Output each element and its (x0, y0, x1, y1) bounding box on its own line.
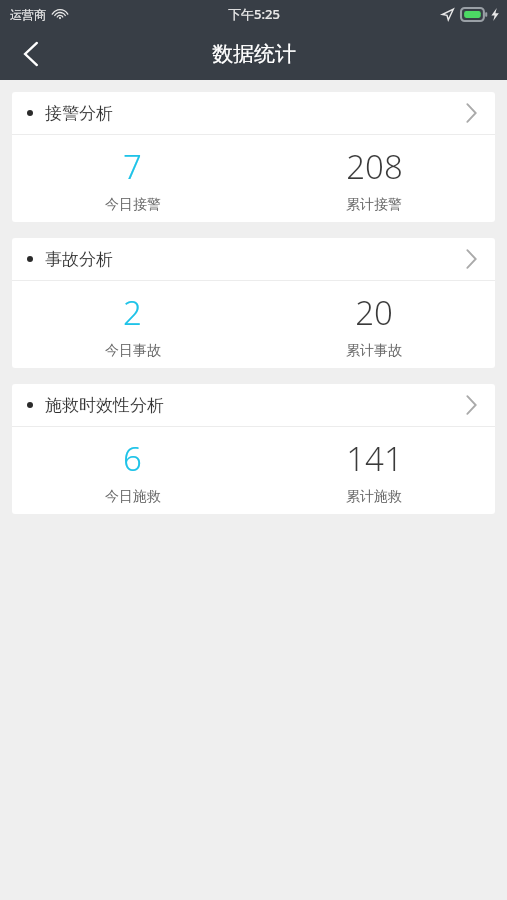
staticText: 累计事故 (346, 342, 402, 360)
staticText: 事故分析 (45, 249, 113, 270)
button[interactable]: 2 (12, 290, 253, 360)
staticText: 今日接警 (105, 196, 161, 214)
staticText: 累计施救 (346, 488, 402, 506)
button[interactable]: 208 (253, 144, 495, 214)
staticText: 今日事故 (105, 342, 161, 360)
button[interactable]: 20 (253, 290, 495, 360)
staticText: 接警分析 (45, 103, 113, 124)
staticText: 运营商 (10, 7, 46, 22)
button[interactable]: 6 (12, 436, 253, 506)
staticText: 7 (123, 144, 142, 189)
staticText: 2 (123, 290, 142, 335)
button[interactable]: 141 (253, 436, 495, 506)
button[interactable]: Back (0, 28, 62, 80)
staticText: 数据统计 (212, 41, 296, 67)
button[interactable]: 事故分析 (12, 238, 495, 280)
button[interactable]: 施救时效性分析 (12, 384, 495, 426)
staticText: 141 (346, 436, 403, 481)
staticText: 下午5:25 (228, 5, 280, 23)
staticText: 208 (346, 144, 403, 189)
button[interactable]: 7 (12, 144, 253, 214)
button[interactable]: 接警分析 (12, 92, 495, 134)
staticText: 6 (123, 436, 142, 481)
staticText: 今日施救 (105, 488, 161, 506)
staticText: 20 (355, 290, 393, 335)
staticText: 累计接警 (346, 196, 402, 214)
staticText: 施救时效性分析 (45, 395, 164, 416)
